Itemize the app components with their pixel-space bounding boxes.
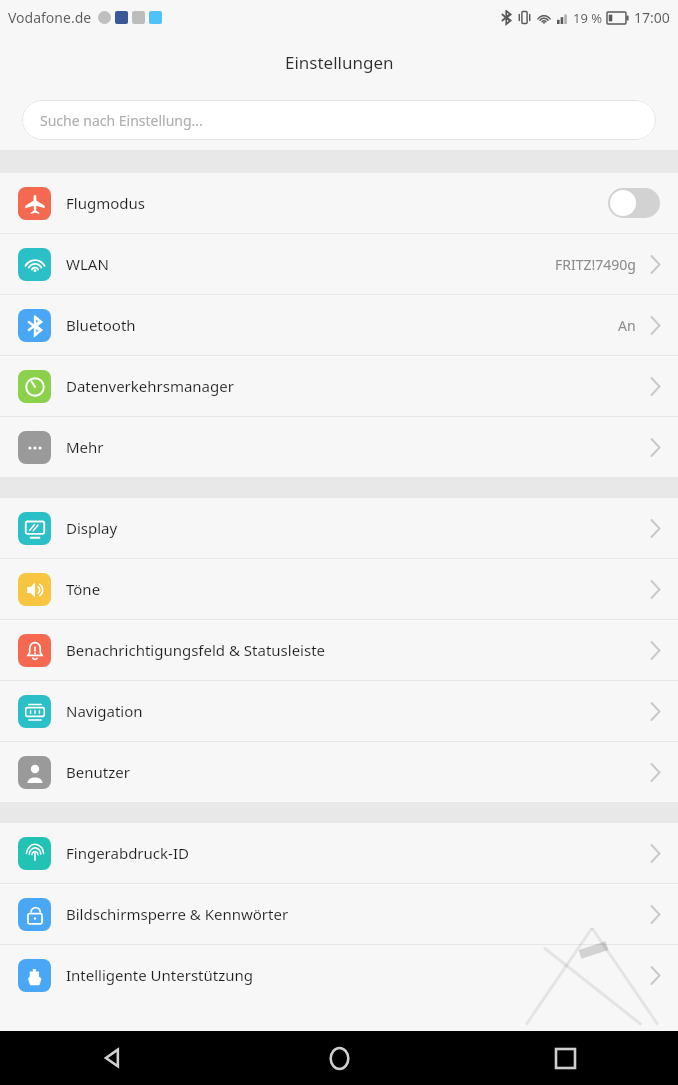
staticText: Bluetooth bbox=[66, 315, 136, 335]
button[interactable]: Datenverkehrsmanager bbox=[0, 356, 678, 416]
staticText: Benutzer bbox=[66, 762, 130, 782]
staticText: Fingerabdruck-ID bbox=[66, 843, 189, 863]
staticText: Flugmodus bbox=[66, 193, 145, 213]
button[interactable]: Bluetooth bbox=[0, 295, 678, 355]
staticText: 19 % bbox=[573, 9, 603, 27]
staticText: Suche nach Einstellung... bbox=[40, 111, 203, 130]
button[interactable]: Töne bbox=[0, 559, 678, 619]
button[interactable]: Intelligente Unterstützung bbox=[0, 945, 678, 1005]
button[interactable]: Benachrichtigungsfeld & Statusleiste bbox=[0, 620, 678, 680]
button[interactable]: Display bbox=[0, 498, 678, 558]
button[interactable]: Fingerabdruck-ID bbox=[0, 823, 678, 883]
staticText: WLAN bbox=[66, 254, 109, 274]
button[interactable]: Startbildschirm bbox=[226, 1031, 452, 1085]
button[interactable]: Mehr bbox=[0, 417, 678, 477]
button[interactable]: Übersicht bbox=[452, 1031, 678, 1085]
button[interactable]: Flugmodus umschalten bbox=[608, 188, 660, 218]
staticText: Benachrichtigungsfeld & Statusleiste bbox=[66, 640, 326, 660]
staticText: Navigation bbox=[66, 701, 143, 721]
staticText: An bbox=[618, 316, 636, 335]
button[interactable]: Navigation bbox=[0, 681, 678, 741]
button[interactable]: Flugmodus bbox=[0, 173, 678, 233]
staticText: Bildschirmsperre & Kennwörter bbox=[66, 904, 289, 924]
staticText: Einstellungen bbox=[285, 51, 394, 74]
staticText: Vodafone.de bbox=[8, 8, 92, 27]
button[interactable]: Benutzer bbox=[0, 742, 678, 802]
button[interactable]: WLAN bbox=[0, 234, 678, 294]
staticText: Datenverkehrsmanager bbox=[66, 376, 234, 396]
staticText: FRITZ!7490g bbox=[555, 255, 636, 274]
staticText: 17:00 bbox=[634, 8, 670, 27]
staticText: Töne bbox=[66, 579, 101, 599]
staticText: Mehr bbox=[66, 437, 104, 457]
button[interactable]: Zurück bbox=[0, 1031, 226, 1085]
button[interactable]: Bildschirmsperre & Kennwörter bbox=[0, 884, 678, 944]
staticText: Display bbox=[66, 518, 118, 538]
staticText: Intelligente Unterstützung bbox=[66, 965, 253, 985]
button[interactable]: Suche nach Einstellung... bbox=[22, 100, 656, 140]
